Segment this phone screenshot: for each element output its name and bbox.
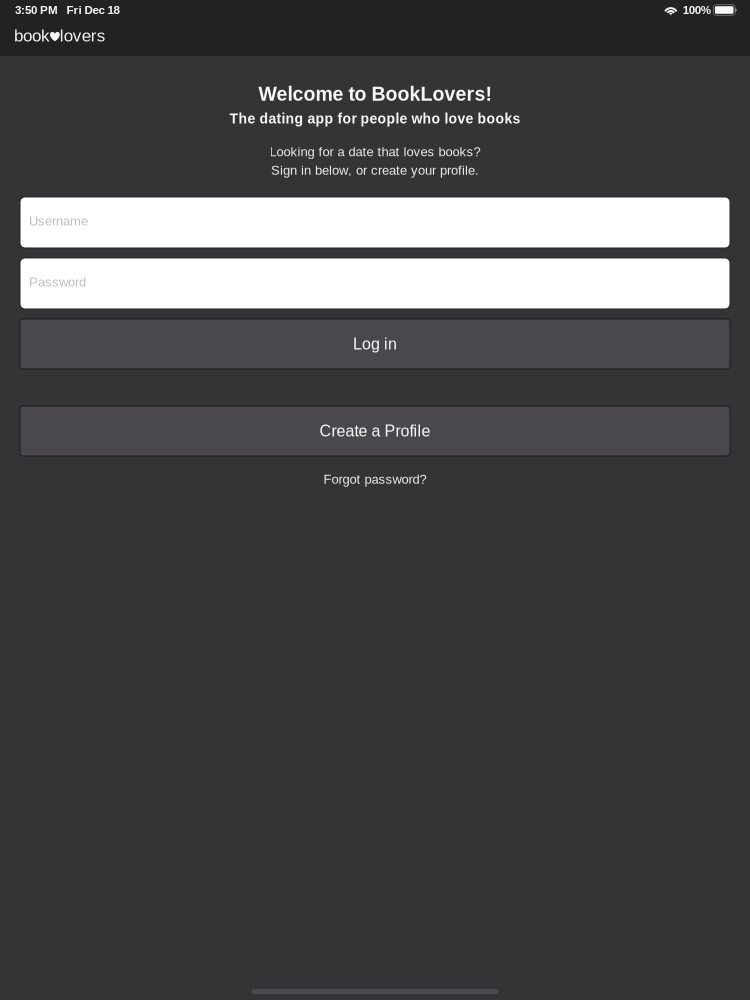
- button[interactable]: Log in: [20, 319, 730, 369]
- staticText: Log in: [353, 335, 397, 353]
- staticText: 100%: [683, 3, 711, 16]
- staticText: Looking for a date that loves books?: [269, 144, 480, 159]
- staticText: book: [14, 26, 50, 45]
- staticText: Forgot password?: [323, 472, 426, 486]
- button[interactable]: Username: [20, 197, 730, 248]
- button[interactable]: Forgot password?: [323, 456, 426, 492]
- staticText: Password: [29, 275, 86, 289]
- staticText: Create a Profile: [319, 422, 430, 440]
- staticText: Fri Dec 18: [66, 3, 119, 16]
- staticText: The dating app for people who love books: [229, 111, 520, 126]
- staticText: Sign in below, or create your profile.: [271, 163, 479, 177]
- staticText: Welcome to BookLovers!: [258, 83, 491, 105]
- button[interactable]: Create a Profile: [20, 406, 730, 456]
- button[interactable]: Password: [20, 258, 730, 309]
- staticText: Username: [29, 214, 88, 228]
- staticText: 3:50 PM: [15, 3, 58, 16]
- staticText: lovers: [60, 26, 106, 45]
